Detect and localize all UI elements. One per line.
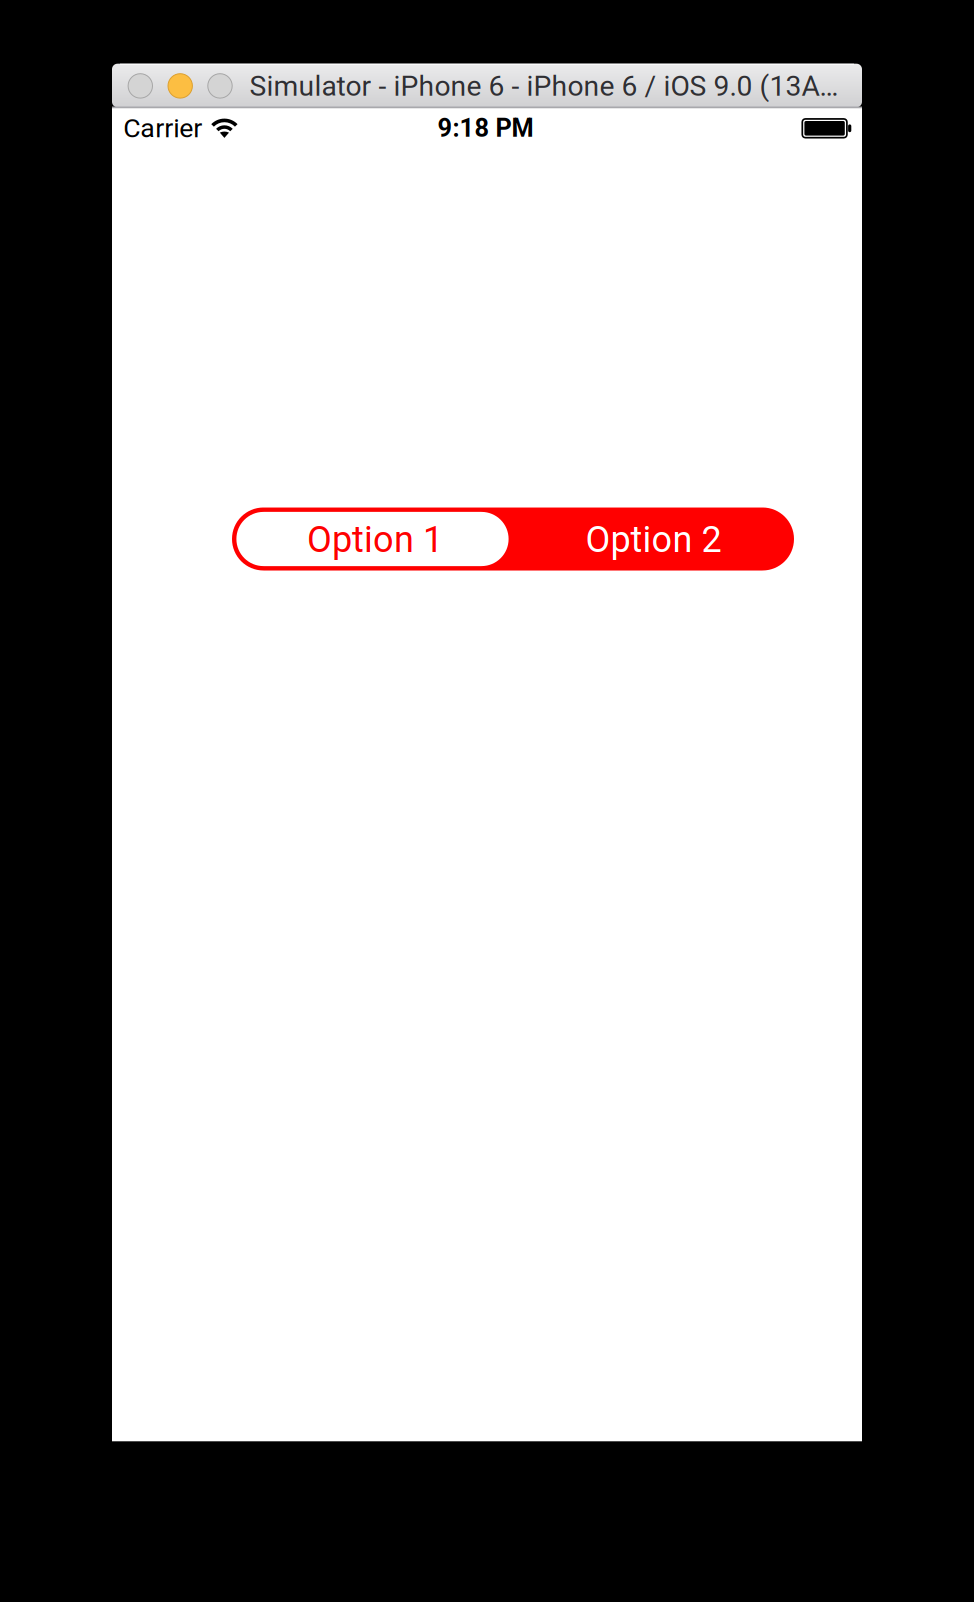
staticText: 9:18 PM [437,113,533,143]
staticText: Option 2 [585,518,721,561]
button[interactable]: Option 2 [517,512,790,566]
button[interactable]: Minimise [168,74,192,98]
button[interactable]: Option 1 [236,512,509,566]
button[interactable]: Zoom [208,74,232,98]
staticText: Option 1 [307,518,443,561]
staticText: Carrier [123,112,202,144]
button[interactable]: Close [128,74,152,98]
staticText: Simulator - iPhone 6 - iPhone 6 / iOS 9.… [250,70,839,103]
